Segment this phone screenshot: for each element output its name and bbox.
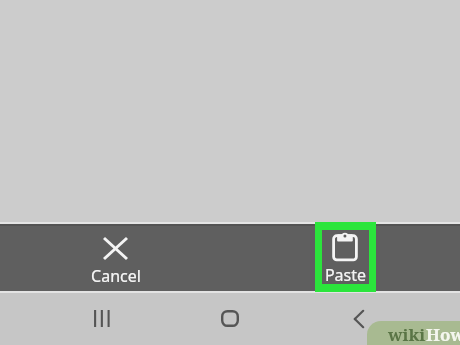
staticText: Paste [322, 264, 369, 286]
button[interactable]: Home [212, 300, 248, 336]
staticText: Cancel [60, 265, 172, 287]
button[interactable]: Cancel [60, 223, 172, 290]
staticText: wiki [388, 323, 426, 345]
staticText: How [426, 323, 460, 345]
button[interactable]: Back [341, 301, 377, 337]
button[interactable]: Paste [315, 222, 376, 292]
button[interactable]: Recent apps [84, 300, 120, 336]
